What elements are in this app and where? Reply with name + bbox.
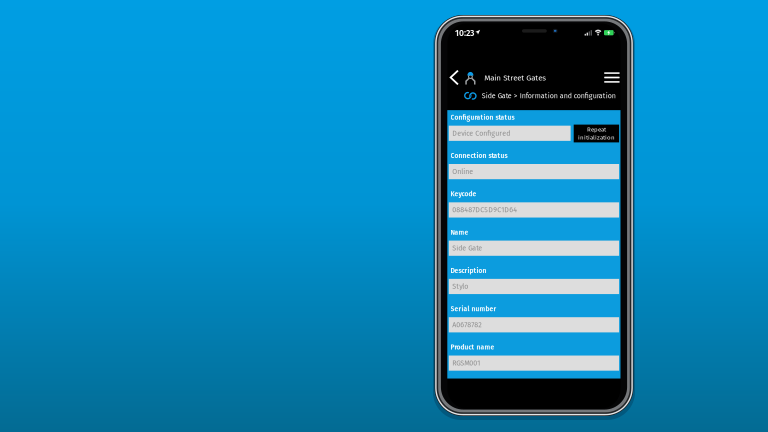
staticText: Side Gate bbox=[452, 244, 482, 252]
staticText: 088487DC5D9C1D64 bbox=[452, 206, 517, 214]
staticText: Description bbox=[451, 267, 487, 275]
staticText: RGSM001 bbox=[452, 359, 480, 367]
staticText: Keycode bbox=[451, 190, 477, 198]
staticText: initialization bbox=[578, 134, 615, 141]
staticText: Repeat bbox=[587, 126, 606, 133]
button[interactable]: Repeat bbox=[574, 125, 619, 142]
staticText: Name bbox=[451, 228, 469, 236]
staticText: 10:23 bbox=[455, 28, 474, 38]
staticText: A0678782 bbox=[452, 321, 481, 329]
button[interactable]: Menu bbox=[603, 70, 620, 85]
staticText: Configuration status bbox=[451, 113, 515, 121]
staticText: Serial number bbox=[451, 305, 497, 313]
staticText: Stylo bbox=[452, 282, 468, 291]
staticText: Product name bbox=[451, 343, 495, 351]
staticText: Online bbox=[452, 167, 473, 176]
button[interactable]: Back bbox=[449, 70, 463, 85]
staticText: Side Gate > Information and configuratio… bbox=[482, 92, 616, 100]
staticText: Connection status bbox=[451, 152, 508, 160]
staticText: Device Configured bbox=[452, 129, 510, 138]
staticText: Main Street Gates bbox=[484, 73, 546, 83]
